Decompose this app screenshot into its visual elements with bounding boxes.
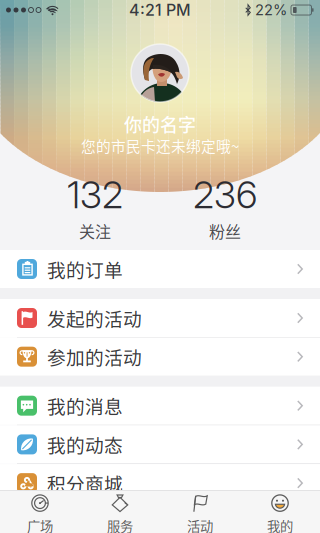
button[interactable]: 我的消息 <box>0 387 320 425</box>
button[interactable]: 服务 <box>80 490 160 533</box>
staticText: 我的 <box>267 516 293 533</box>
staticText: 积分商城 <box>47 470 123 497</box>
button[interactable]: 活动 <box>160 490 240 533</box>
button[interactable]: 积分商城 <box>0 464 320 502</box>
staticText: 关注 <box>79 219 111 242</box>
button[interactable]: 我的动态 <box>0 425 320 463</box>
staticText: 我的订单 <box>47 255 123 282</box>
staticText: 广场 <box>27 516 53 533</box>
button[interactable]: 参加的活动 <box>0 338 320 376</box>
staticText: 22% <box>255 1 287 19</box>
button[interactable]: 我的订单 <box>0 250 320 288</box>
staticText: 发起的活动 <box>47 304 142 331</box>
staticText: 参加的活动 <box>47 343 142 370</box>
staticText: 我的动态 <box>47 431 123 458</box>
staticText: 132 <box>67 172 123 217</box>
button[interactable]: 广场 <box>0 490 80 533</box>
button[interactable]: 发起的活动 <box>0 299 320 337</box>
staticText: 粉丝 <box>209 219 241 242</box>
staticText: 您的市民卡还未绑定哦~ <box>81 135 239 156</box>
staticText: 我的消息 <box>47 392 123 419</box>
staticText: 活动 <box>187 516 213 533</box>
staticText: 4:21 PM <box>129 0 191 20</box>
staticText: 236 <box>193 172 257 217</box>
button[interactable]: 我的 <box>240 490 320 533</box>
staticText: 你的名字 <box>124 111 196 137</box>
staticText: 服务 <box>107 516 133 533</box>
